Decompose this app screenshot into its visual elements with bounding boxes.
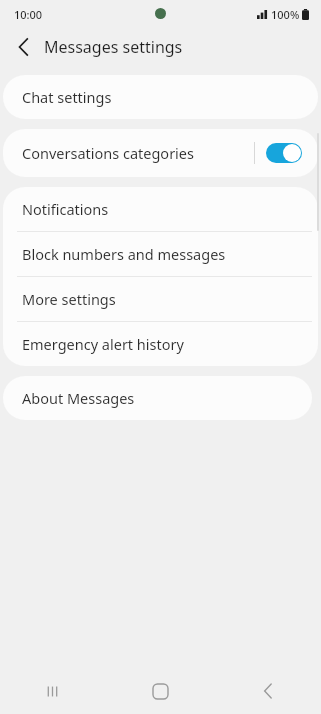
button[interactable]: Recent apps: [0, 668, 107, 714]
staticText: Block numbers and messages: [22, 244, 226, 264]
staticText: Messages settings: [44, 36, 183, 58]
button[interactable]: Emergency alert history: [3, 322, 318, 366]
staticText: About Messages: [22, 388, 135, 408]
button[interactable]: Conversations categories: [3, 129, 318, 177]
staticText: More settings: [22, 289, 116, 309]
staticText: Chat settings: [22, 87, 112, 107]
button[interactable]: Block numbers and messages: [3, 232, 318, 276]
staticText: Notifications: [22, 199, 109, 219]
staticText: Emergency alert history: [22, 334, 184, 354]
button[interactable]: Chat settings: [3, 75, 318, 119]
button[interactable]: About Messages: [3, 376, 312, 420]
button[interactable]: More settings: [3, 277, 318, 321]
button[interactable]: Back: [6, 30, 40, 64]
button[interactable]: Notifications: [3, 187, 318, 231]
button[interactable]: Home: [107, 668, 214, 714]
button[interactable]: Back: [214, 668, 321, 714]
staticText: 100%: [271, 7, 300, 22]
button[interactable]: Conversations categories toggle: [266, 143, 302, 163]
staticText: 10:00: [14, 7, 43, 22]
staticText: Conversations categories: [22, 143, 254, 163]
